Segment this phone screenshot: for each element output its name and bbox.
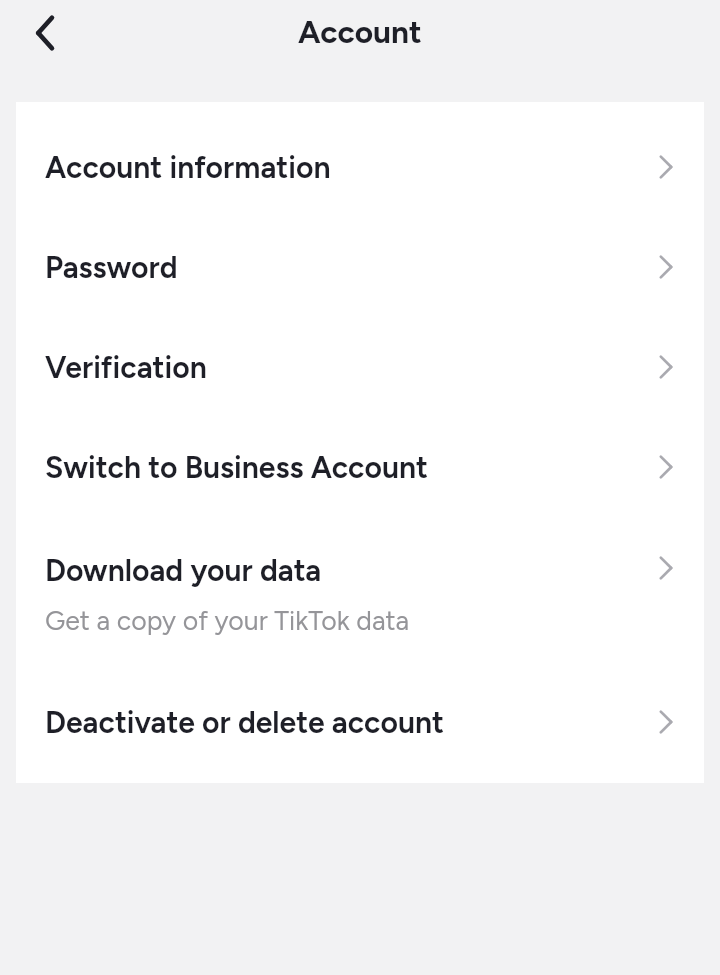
other: Switch to Business Account <box>653 454 679 480</box>
other: Account information <box>653 154 679 180</box>
button[interactable]: Back <box>18 5 74 61</box>
other: Password <box>653 254 679 280</box>
staticText: Get a copy of your TikTok data <box>45 605 410 637</box>
button[interactable]: Verification <box>16 317 704 417</box>
other: Verification <box>653 354 679 380</box>
other: Download your data <box>653 555 679 581</box>
button[interactable]: Switch to Business Account <box>16 417 704 517</box>
staticText: Download your data <box>45 552 322 588</box>
staticText: Deactivate or delete account <box>45 704 444 740</box>
button[interactable]: Download your data <box>16 517 704 672</box>
other: Deactivate or delete account <box>653 709 679 735</box>
button[interactable]: Account information <box>16 117 704 217</box>
staticText: Account information <box>45 149 331 185</box>
staticText: Account <box>298 13 422 51</box>
staticText: Password <box>45 249 178 285</box>
button[interactable]: Deactivate or delete account <box>16 672 704 772</box>
button[interactable]: Password <box>16 217 704 317</box>
staticText: Verification <box>45 349 207 385</box>
staticText: Switch to Business Account <box>45 449 428 485</box>
